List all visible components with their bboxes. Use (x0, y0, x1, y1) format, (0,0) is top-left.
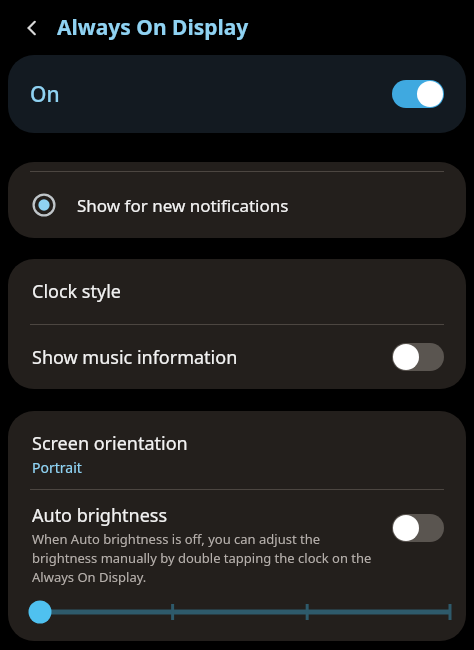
button[interactable]: Switch off (392, 514, 444, 542)
button[interactable]: Brightness slider (22, 599, 452, 625)
staticText: Clock style (32, 279, 121, 304)
button[interactable]: Show for new notifications (8, 172, 466, 238)
staticText: Show music information (32, 345, 238, 370)
button[interactable]: Clock style (8, 259, 466, 324)
button[interactable]: On (8, 55, 466, 133)
staticText: On (30, 80, 60, 109)
staticText: Always On Display (57, 13, 249, 42)
staticText: Portrait (32, 458, 82, 477)
button[interactable]: Switch on (392, 80, 444, 108)
staticText: Auto brightness (32, 503, 168, 528)
button[interactable]: Switch off (392, 343, 444, 371)
button[interactable]: Back (16, 12, 48, 44)
button[interactable]: Auto brightness (8, 490, 466, 586)
staticText: Show for new notifications (77, 194, 289, 217)
button[interactable]: Show music information (8, 325, 466, 389)
button[interactable]: Screen orientation (8, 411, 466, 489)
staticText: When Auto brightness is off, you can adj… (32, 530, 384, 586)
staticText: Screen orientation (32, 431, 188, 456)
